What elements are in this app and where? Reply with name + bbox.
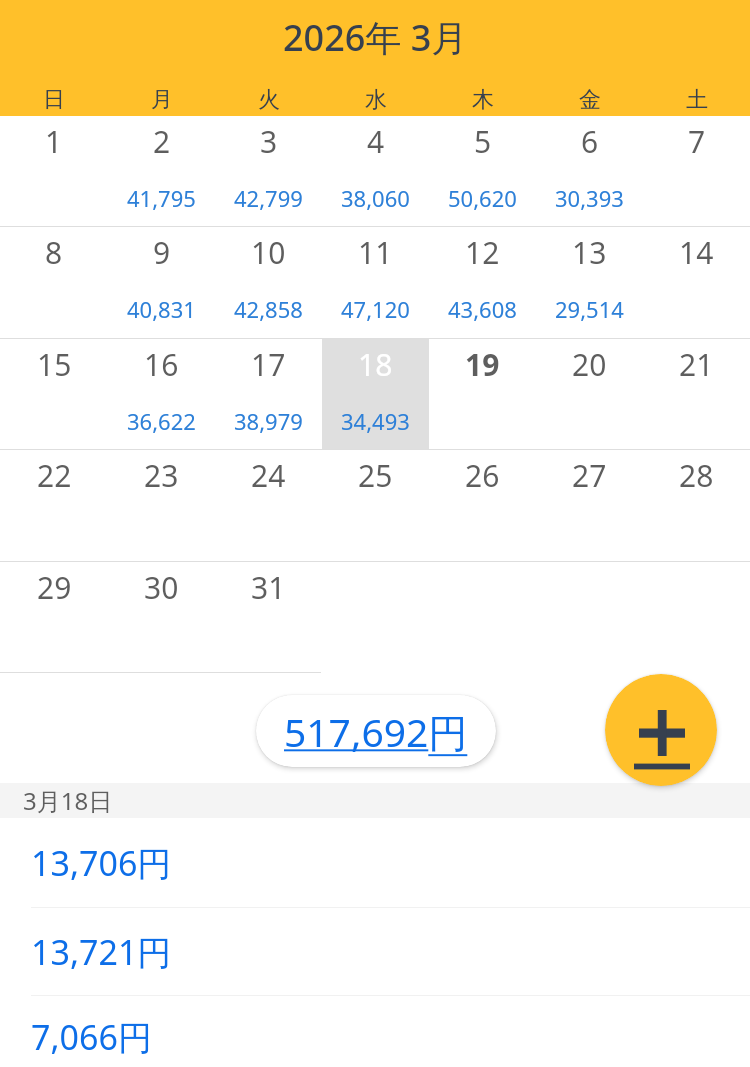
button[interactable]: 29 xyxy=(0,562,108,672)
button[interactable]: 20 xyxy=(536,339,643,449)
button[interactable]: 1 xyxy=(0,116,108,226)
button[interactable]: 10 xyxy=(215,227,322,338)
staticText: 24 xyxy=(251,455,286,496)
staticText: 36,622 xyxy=(127,406,196,436)
staticText: 7 xyxy=(688,121,706,162)
staticText: 月 xyxy=(151,86,173,114)
button[interactable]: 13 xyxy=(536,227,643,338)
staticText: 50,620 xyxy=(448,183,517,213)
staticText: 13,721円 xyxy=(31,929,172,975)
staticText: 火 xyxy=(258,86,280,114)
button[interactable]: 22 xyxy=(0,450,108,561)
staticText: 2026年 3月 xyxy=(283,13,468,62)
staticText: 13,706円 xyxy=(31,840,172,886)
button[interactable]: 7 xyxy=(643,116,750,226)
staticText: 29,514 xyxy=(555,294,624,324)
button[interactable]: 19 xyxy=(429,339,536,449)
staticText: 10 xyxy=(251,232,286,273)
button[interactable]: 17 xyxy=(215,339,322,449)
staticText: 5 xyxy=(474,121,492,162)
staticText: 14 xyxy=(679,232,714,273)
button[interactable]: 9 xyxy=(108,227,215,338)
staticText: 19 xyxy=(465,344,500,385)
button[interactable]: 16 xyxy=(108,339,215,449)
staticText: 12 xyxy=(465,232,500,273)
staticText: 木 xyxy=(472,86,494,114)
button[interactable]: 5 xyxy=(429,116,536,226)
button[interactable]: 26 xyxy=(429,450,536,561)
button[interactable]: 30 xyxy=(108,562,215,672)
button[interactable]: 2 xyxy=(108,116,215,226)
staticText: 40,831 xyxy=(127,294,196,324)
button[interactable]: 4 xyxy=(322,116,429,226)
staticText: 21 xyxy=(679,344,714,385)
staticText: 42,799 xyxy=(234,183,303,213)
staticText: 34,493 xyxy=(341,406,410,436)
button[interactable]: 13,721円 xyxy=(0,908,750,996)
staticText: 3月18日 xyxy=(23,784,113,817)
button[interactable]: 21 xyxy=(643,339,750,449)
staticText: 517,692円 xyxy=(284,705,468,758)
button[interactable]: 27 xyxy=(536,450,643,561)
staticText: 30,393 xyxy=(555,183,624,213)
staticText: 9 xyxy=(153,232,171,273)
staticText: 3 xyxy=(260,121,278,162)
button[interactable]: 24 xyxy=(215,450,322,561)
staticText: 18 xyxy=(358,344,393,385)
staticText: 25 xyxy=(358,455,393,496)
button[interactable]: 28 xyxy=(643,450,750,561)
button[interactable]: 25 xyxy=(322,450,429,561)
staticText: 17 xyxy=(251,344,286,385)
staticText: 日 xyxy=(43,86,65,114)
staticText: 2 xyxy=(153,121,171,162)
button[interactable]: 12 xyxy=(429,227,536,338)
staticText: 43,608 xyxy=(448,294,517,324)
staticText: 金 xyxy=(579,86,601,114)
staticText: 22 xyxy=(37,455,72,496)
button[interactable]: 31 xyxy=(215,562,322,672)
button[interactable]: 8 xyxy=(0,227,108,338)
button[interactable]: 14 xyxy=(643,227,750,338)
staticText: 13 xyxy=(572,232,607,273)
button[interactable]: 517,692円 xyxy=(256,695,496,767)
button[interactable]: 3 xyxy=(215,116,322,226)
staticText: 41,795 xyxy=(127,183,196,213)
staticText: 4 xyxy=(367,121,385,162)
staticText: 38,979 xyxy=(234,406,303,436)
staticText: 31 xyxy=(251,567,286,608)
staticText: 42,858 xyxy=(234,294,303,324)
staticText: 6 xyxy=(581,121,599,162)
button[interactable]: 13,706円 xyxy=(0,818,750,908)
button[interactable]: 6 xyxy=(536,116,643,226)
staticText: 47,120 xyxy=(341,294,410,324)
staticText: 11 xyxy=(358,232,393,273)
button[interactable]: 18 xyxy=(322,339,429,449)
staticText: 30 xyxy=(144,567,179,608)
button[interactable]: Add income or expense xyxy=(605,674,717,786)
staticText: 27 xyxy=(572,455,607,496)
staticText: 15 xyxy=(37,344,72,385)
staticText: 水 xyxy=(365,86,387,114)
button[interactable]: 15 xyxy=(0,339,108,449)
staticText: 29 xyxy=(37,567,72,608)
staticText: 26 xyxy=(465,455,500,496)
staticText: 28 xyxy=(679,455,714,496)
button[interactable]: 11 xyxy=(322,227,429,338)
staticText: 16 xyxy=(144,344,179,385)
button[interactable]: 23 xyxy=(108,450,215,561)
button[interactable]: 7,066円 xyxy=(0,996,750,1067)
staticText: 土 xyxy=(686,86,708,114)
staticText: 1 xyxy=(45,121,63,162)
staticText: 23 xyxy=(144,455,179,496)
staticText: 20 xyxy=(572,344,607,385)
staticText: 8 xyxy=(45,232,63,273)
staticText: 38,060 xyxy=(341,183,410,213)
staticText: 7,066円 xyxy=(31,1014,152,1060)
